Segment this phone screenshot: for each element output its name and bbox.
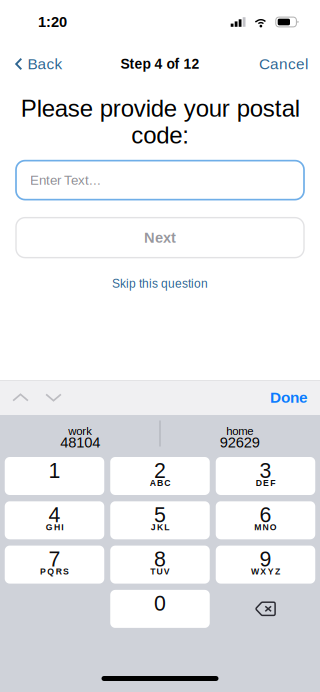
staticText: ABC (150, 478, 170, 488)
staticText: MNO (254, 522, 277, 532)
staticText: TUV (150, 567, 170, 576)
button[interactable]: Next field (37, 380, 70, 415)
button[interactable]: 4 (5, 501, 104, 539)
staticText: 5 (154, 503, 166, 527)
staticText: 8 (154, 547, 166, 571)
button[interactable]: 7 (5, 546, 104, 584)
button[interactable]: 3 (216, 457, 315, 495)
staticText: Next (144, 229, 176, 246)
staticText: Please provide your postal code: (20, 95, 299, 149)
staticText: 4 (48, 503, 60, 527)
button[interactable]: Previous field (4, 380, 37, 415)
staticText: 48104 (60, 434, 100, 451)
button[interactable]: Back (8, 46, 69, 82)
staticText: Done (270, 389, 308, 406)
staticText: GHI (46, 522, 63, 532)
button[interactable]: work (0, 415, 160, 452)
button[interactable]: 6 (216, 501, 315, 539)
staticText: PQRS (40, 567, 69, 576)
button[interactable]: Skip this question (100, 273, 220, 295)
staticText: 6 (259, 503, 271, 527)
staticText: Back (27, 55, 62, 72)
button[interactable]: Delete (216, 590, 315, 628)
staticText: 1 (48, 459, 60, 482)
staticText: Step 4 of 12 (120, 56, 199, 72)
staticText: 2 (154, 459, 166, 482)
staticText: DEF (256, 478, 275, 488)
staticText: 3 (259, 459, 271, 482)
button[interactable]: Cancel (252, 46, 315, 82)
staticText: WXYZ (251, 567, 280, 576)
button[interactable]: home (160, 415, 319, 452)
staticText: Skip this question (112, 277, 208, 290)
staticText: 92629 (220, 434, 260, 451)
button[interactable]: 8 (110, 546, 210, 584)
button[interactable]: 2 (110, 457, 210, 495)
staticText: 7 (48, 547, 60, 571)
button[interactable]: 5 (110, 501, 210, 539)
staticText: 0 (154, 591, 166, 615)
button[interactable]: 1 (5, 457, 104, 495)
staticText: Enter Text... (30, 173, 101, 188)
button[interactable]: Next (16, 218, 304, 258)
staticText: Cancel (259, 55, 308, 72)
button[interactable]: 9 (216, 546, 315, 584)
staticText: work (68, 425, 92, 437)
staticText: JKL (151, 522, 169, 532)
button[interactable]: 0 (110, 590, 210, 628)
button[interactable]: Done (258, 380, 320, 415)
staticText: home (226, 425, 253, 437)
staticText: 9 (259, 547, 271, 571)
staticText: 1:20 (38, 14, 67, 30)
